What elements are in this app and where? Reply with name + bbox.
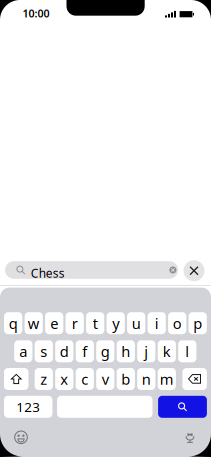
staticText: z [40, 369, 47, 389]
button[interactable]: o [168, 312, 186, 334]
button[interactable]: Emoji [14, 430, 28, 444]
button[interactable]: m [158, 368, 176, 390]
button[interactable]: c [76, 368, 94, 390]
staticText: t [93, 313, 98, 333]
button[interactable]: k [158, 340, 176, 362]
button[interactable]: s [35, 340, 53, 362]
staticText: y [112, 313, 119, 333]
staticText: l [185, 342, 189, 361]
button[interactable]: i [148, 312, 166, 334]
button[interactable]: p [189, 312, 207, 334]
button[interactable]: q [4, 312, 22, 334]
staticText: s [40, 342, 47, 361]
staticText: i [155, 313, 159, 333]
button[interactable]: Dictate [183, 430, 196, 444]
button[interactable]: d [55, 340, 73, 362]
button[interactable]: f [76, 340, 94, 362]
button[interactable]: v [96, 368, 114, 390]
staticText: o [173, 313, 182, 333]
button[interactable]: 123 [4, 396, 52, 418]
staticText: c [81, 369, 88, 389]
staticText: a [19, 342, 27, 361]
button[interactable]: z [35, 368, 53, 390]
staticText: e [50, 313, 58, 333]
staticText: 123 [16, 398, 40, 416]
button[interactable]: e [45, 312, 63, 334]
staticText: n [142, 369, 151, 389]
button[interactable]: n [137, 368, 155, 390]
staticText: f [82, 342, 87, 361]
staticText: m [160, 369, 174, 389]
button[interactable]: l [178, 340, 196, 362]
button[interactable]: Search [158, 396, 207, 418]
button[interactable]: h [117, 340, 135, 362]
button[interactable]: j [137, 340, 155, 362]
staticText: d [60, 342, 69, 361]
staticText: h [121, 342, 130, 361]
staticText: p [193, 313, 202, 333]
staticText: q [9, 313, 18, 333]
button[interactable]: t [86, 312, 104, 334]
button[interactable]: a [14, 340, 32, 362]
button[interactable]: w [25, 312, 43, 334]
staticText: b [121, 369, 130, 389]
button[interactable]: b [117, 368, 135, 390]
staticText: u [132, 313, 141, 333]
staticText: k [163, 342, 171, 361]
staticText: g [101, 342, 110, 361]
staticText: 10:00 [22, 6, 49, 20]
button[interactable]: Chess [5, 261, 178, 279]
staticText: j [144, 342, 148, 361]
button[interactable]: space [57, 396, 152, 418]
staticText: Chess [31, 265, 65, 281]
button[interactable]: g [96, 340, 114, 362]
button[interactable]: r [66, 312, 84, 334]
staticText: v [102, 369, 109, 389]
staticText: x [60, 369, 68, 389]
button[interactable]: y [107, 312, 125, 334]
button[interactable]: Shift [4, 368, 28, 390]
staticText: r [72, 313, 78, 333]
button[interactable]: x [55, 368, 73, 390]
button[interactable]: u [127, 312, 145, 334]
button[interactable]: Delete [182, 368, 207, 390]
staticText: w [28, 313, 40, 333]
button[interactable]: Close search [183, 260, 204, 281]
